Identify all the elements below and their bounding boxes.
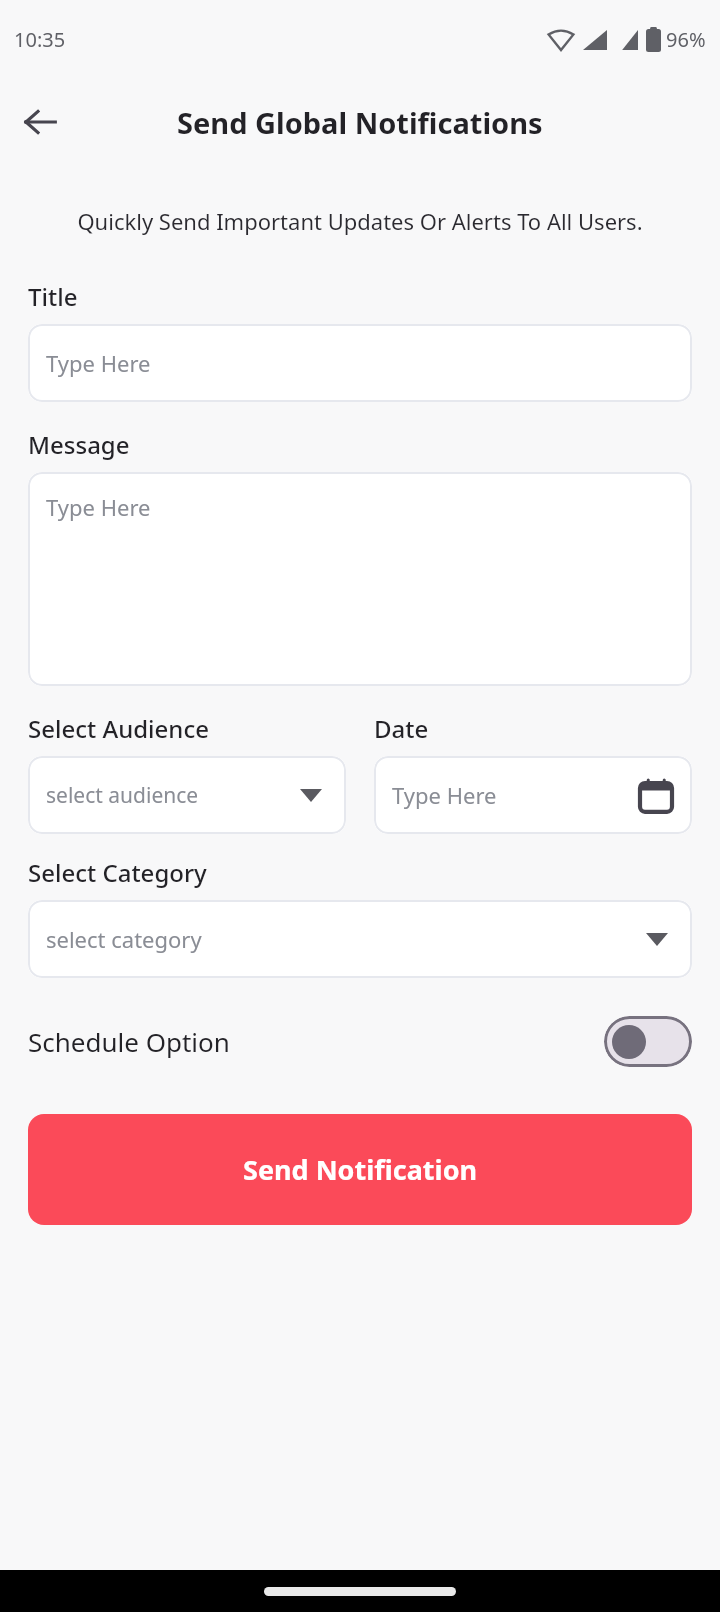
other: Pick date bbox=[636, 775, 676, 815]
staticText: 96% bbox=[666, 26, 706, 53]
staticText: Type Here bbox=[392, 780, 497, 810]
staticText: 10:35 bbox=[14, 26, 66, 53]
button[interactable]: Type Here bbox=[374, 756, 692, 834]
staticText: Quickly Send Important Updates Or Alerts… bbox=[36, 206, 684, 236]
staticText: Title bbox=[28, 280, 78, 313]
staticText: Send Global Notifications bbox=[177, 103, 543, 142]
button[interactable]: select category bbox=[28, 900, 692, 978]
staticText: Schedule Option bbox=[28, 1024, 230, 1059]
button[interactable]: Type Here bbox=[28, 472, 692, 686]
staticText: Type Here bbox=[46, 348, 151, 378]
staticText: select audience bbox=[46, 781, 199, 810]
staticText: select category bbox=[46, 924, 202, 954]
button[interactable]: Back bbox=[16, 98, 64, 146]
staticText: Type Here bbox=[46, 492, 151, 522]
button[interactable]: Send Notification bbox=[28, 1114, 692, 1225]
staticText: Select Audience bbox=[28, 712, 209, 745]
button[interactable]: Schedule Option toggle bbox=[604, 1016, 692, 1067]
button[interactable]: Type Here bbox=[28, 324, 692, 402]
button[interactable]: Schedule Option bbox=[28, 1008, 692, 1074]
staticText: Message bbox=[28, 428, 130, 461]
staticText: Send Notification bbox=[243, 1151, 478, 1188]
staticText: Date bbox=[374, 712, 429, 745]
button[interactable]: select audience bbox=[28, 756, 346, 834]
staticText: Select Category bbox=[28, 856, 207, 889]
